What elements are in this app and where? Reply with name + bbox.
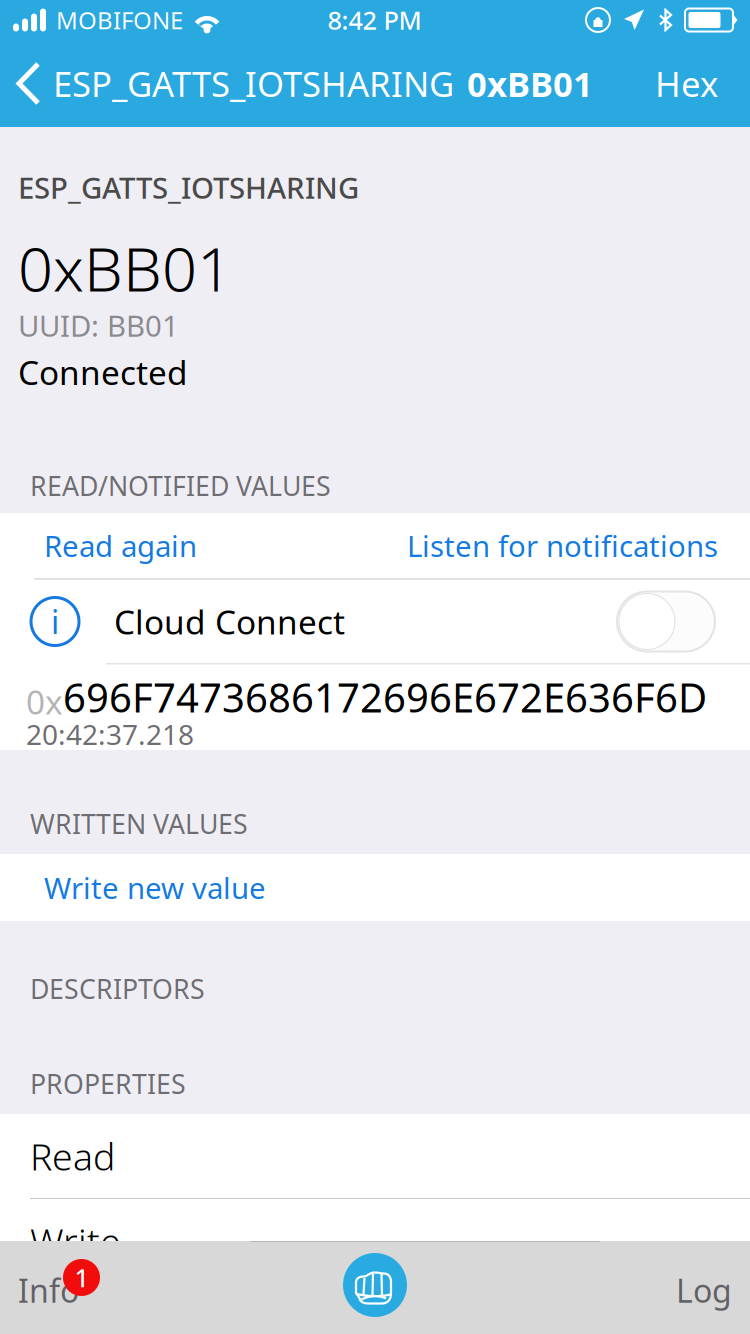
staticText: Hex (655, 60, 718, 106)
button[interactable]: Log (600, 1241, 750, 1334)
button[interactable]: Info (0, 1241, 250, 1334)
staticText: DESCRIPTORS (30, 971, 205, 1006)
staticText: WRITTEN VALUES (30, 806, 248, 841)
staticText: Log (676, 1269, 732, 1311)
button[interactable]: Write new value (0, 854, 750, 921)
staticText: 1 (74, 1261, 88, 1294)
staticText: PROPERTIES (30, 1066, 186, 1101)
staticText: Write new value (44, 868, 266, 907)
button[interactable]: Read again (0, 512, 197, 578)
staticText: Write (30, 1216, 121, 1266)
staticText: 696F7473686172696E672E636F6D (63, 670, 707, 724)
staticText: READ/NOTIFIED VALUES (30, 468, 331, 503)
staticText: Cloud Connect (114, 599, 345, 644)
staticText: ESP_GATTS_IOTSHARING (53, 60, 454, 106)
staticText: MOBIFONE (56, 4, 183, 36)
staticText: i (51, 600, 59, 643)
button[interactable]: Cloud Connect (617, 591, 750, 651)
button[interactable]: Bump (343, 1253, 407, 1317)
staticText: 0xBB01 (18, 227, 232, 308)
button[interactable]: Hex (639, 40, 734, 127)
staticText: Read again (44, 526, 197, 565)
staticText: Listen for notifications (407, 526, 718, 565)
button[interactable]: Listen for notifications (407, 512, 750, 578)
staticText: Read (30, 1131, 115, 1181)
staticText: Info (18, 1269, 79, 1311)
button[interactable]: ESP_GATTS_IOTSHARING (0, 40, 458, 127)
staticText: Connected (18, 350, 188, 394)
staticText: 0x (26, 679, 63, 724)
staticText: 20:42:37.218 (26, 715, 194, 753)
staticText: 8:42 PM (327, 3, 421, 37)
staticText: UUID: BB01 (18, 306, 179, 345)
staticText: ESP_GATTS_IOTSHARING (18, 168, 359, 207)
staticText: 0xBB01 (467, 60, 593, 106)
